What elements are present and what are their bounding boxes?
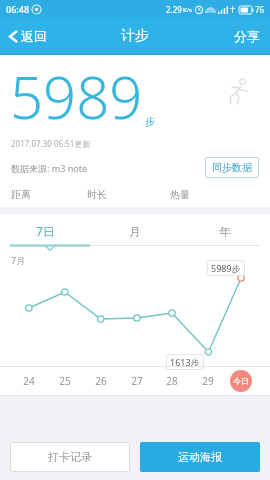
staticText: 月: [129, 224, 141, 239]
staticText: 步: [145, 115, 155, 128]
button[interactable]: 返回: [0, 22, 57, 50]
staticText: 76: [255, 4, 265, 15]
staticText: 年: [219, 224, 231, 239]
staticText: 运动海报: [178, 450, 222, 464]
button[interactable]: 7日: [0, 218, 90, 244]
button[interactable]: 分享: [224, 22, 270, 50]
button[interactable]: 24: [17, 367, 41, 395]
staticText: K/s: [183, 6, 192, 14]
staticText: 计步: [121, 27, 149, 45]
staticText: 06:48: [6, 3, 30, 15]
staticText: 打卡记录: [48, 450, 92, 464]
staticText: 今日: [233, 376, 249, 386]
staticText: 25: [59, 374, 71, 388]
button[interactable]: 打卡记录: [10, 442, 130, 472]
staticText: 26: [95, 374, 107, 388]
staticText: 24: [23, 374, 35, 388]
staticText: 27: [131, 374, 143, 388]
staticText: 热量: [170, 188, 190, 201]
staticText: 5989步: [211, 262, 241, 274]
staticText: 数据来源: m3 note: [11, 162, 87, 174]
other: Running: [224, 77, 254, 107]
staticText: 7日: [36, 223, 55, 239]
staticText: 返回: [21, 28, 47, 44]
button[interactable]: 同步数据: [205, 157, 259, 178]
staticText: 1613步: [170, 356, 200, 368]
button[interactable]: 28: [160, 367, 184, 395]
staticText: 29: [202, 374, 214, 388]
button[interactable]: 26: [89, 367, 113, 395]
button[interactable]: 运动海报: [140, 442, 260, 472]
button[interactable]: 年: [180, 218, 270, 244]
button[interactable]: 月: [90, 218, 180, 244]
button[interactable]: 29: [196, 367, 220, 395]
staticText: 同步数据: [212, 161, 252, 174]
staticText: 2.29: [166, 4, 182, 15]
staticText: 时长: [87, 188, 107, 201]
button[interactable]: 25: [53, 367, 77, 395]
staticText: 距离: [11, 188, 31, 201]
staticText: 7月: [11, 254, 26, 266]
staticText: 分享: [234, 28, 260, 44]
button[interactable]: 今日: [230, 370, 252, 392]
staticText: 2017.07.30 06:51更新: [11, 138, 91, 149]
staticText: 5989: [10, 57, 143, 136]
staticText: 28: [166, 374, 178, 388]
button[interactable]: 27: [125, 367, 149, 395]
